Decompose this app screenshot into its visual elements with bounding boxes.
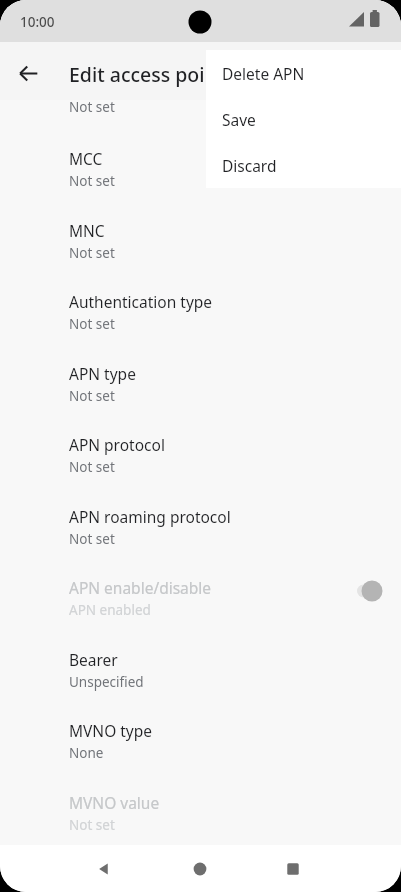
- button[interactable]: Bearer: [0, 635, 401, 706]
- staticText: MCC: [69, 148, 103, 169]
- staticText: Not set: [69, 244, 115, 262]
- staticText: Not set: [69, 458, 115, 476]
- staticText: Edit access point: [69, 61, 225, 88]
- staticText: Not set: [69, 530, 115, 548]
- button[interactable]: APN type: [0, 349, 401, 420]
- staticText: Delete APN: [222, 63, 305, 84]
- staticText: Unspecified: [69, 673, 144, 691]
- button[interactable]: Discard: [206, 142, 401, 188]
- button[interactable]: Save: [206, 96, 401, 142]
- staticText: 10:00: [20, 13, 55, 31]
- button[interactable]: Back: [80, 845, 128, 892]
- button[interactable]: APN protocol: [0, 420, 401, 491]
- staticText: Not set: [69, 315, 115, 333]
- button[interactable]: Home: [176, 845, 224, 892]
- button[interactable]: Authentication type: [0, 277, 401, 348]
- staticText: APN roaming protocol: [69, 506, 231, 527]
- button[interactable]: APN roaming protocol: [0, 492, 401, 563]
- staticText: APN protocol: [69, 434, 165, 455]
- button[interactable]: MCC: [0, 134, 401, 205]
- staticText: Not set: [69, 387, 115, 405]
- staticText: APN type: [69, 363, 136, 384]
- staticText: MNC: [69, 220, 105, 241]
- staticText: Authentication type: [69, 291, 213, 312]
- staticText: Bearer: [69, 649, 118, 670]
- staticText: Not set: [69, 98, 115, 116]
- staticText: APN enable/disable: [69, 577, 212, 598]
- staticText: APN enabled: [69, 601, 151, 619]
- staticText: MVNO type: [69, 720, 153, 741]
- button[interactable]: Delete APN: [206, 50, 401, 96]
- staticText: None: [69, 744, 104, 762]
- staticText: MVNO value: [69, 792, 160, 813]
- staticText: Not set: [69, 172, 115, 190]
- button[interactable]: MNC: [0, 206, 401, 277]
- staticText: Save: [222, 109, 256, 130]
- button[interactable]: Navigate up: [10, 55, 46, 91]
- button[interactable]: MVNO type: [0, 706, 401, 777]
- button[interactable]: Recent apps: [269, 845, 317, 892]
- button[interactable]: APN enable/disable: [0, 563, 401, 634]
- button[interactable]: APN enable/disable toggle: [341, 571, 389, 611]
- staticText: Not set: [69, 816, 115, 834]
- button[interactable]: MVNO value: [0, 778, 401, 849]
- staticText: Discard: [222, 155, 277, 176]
